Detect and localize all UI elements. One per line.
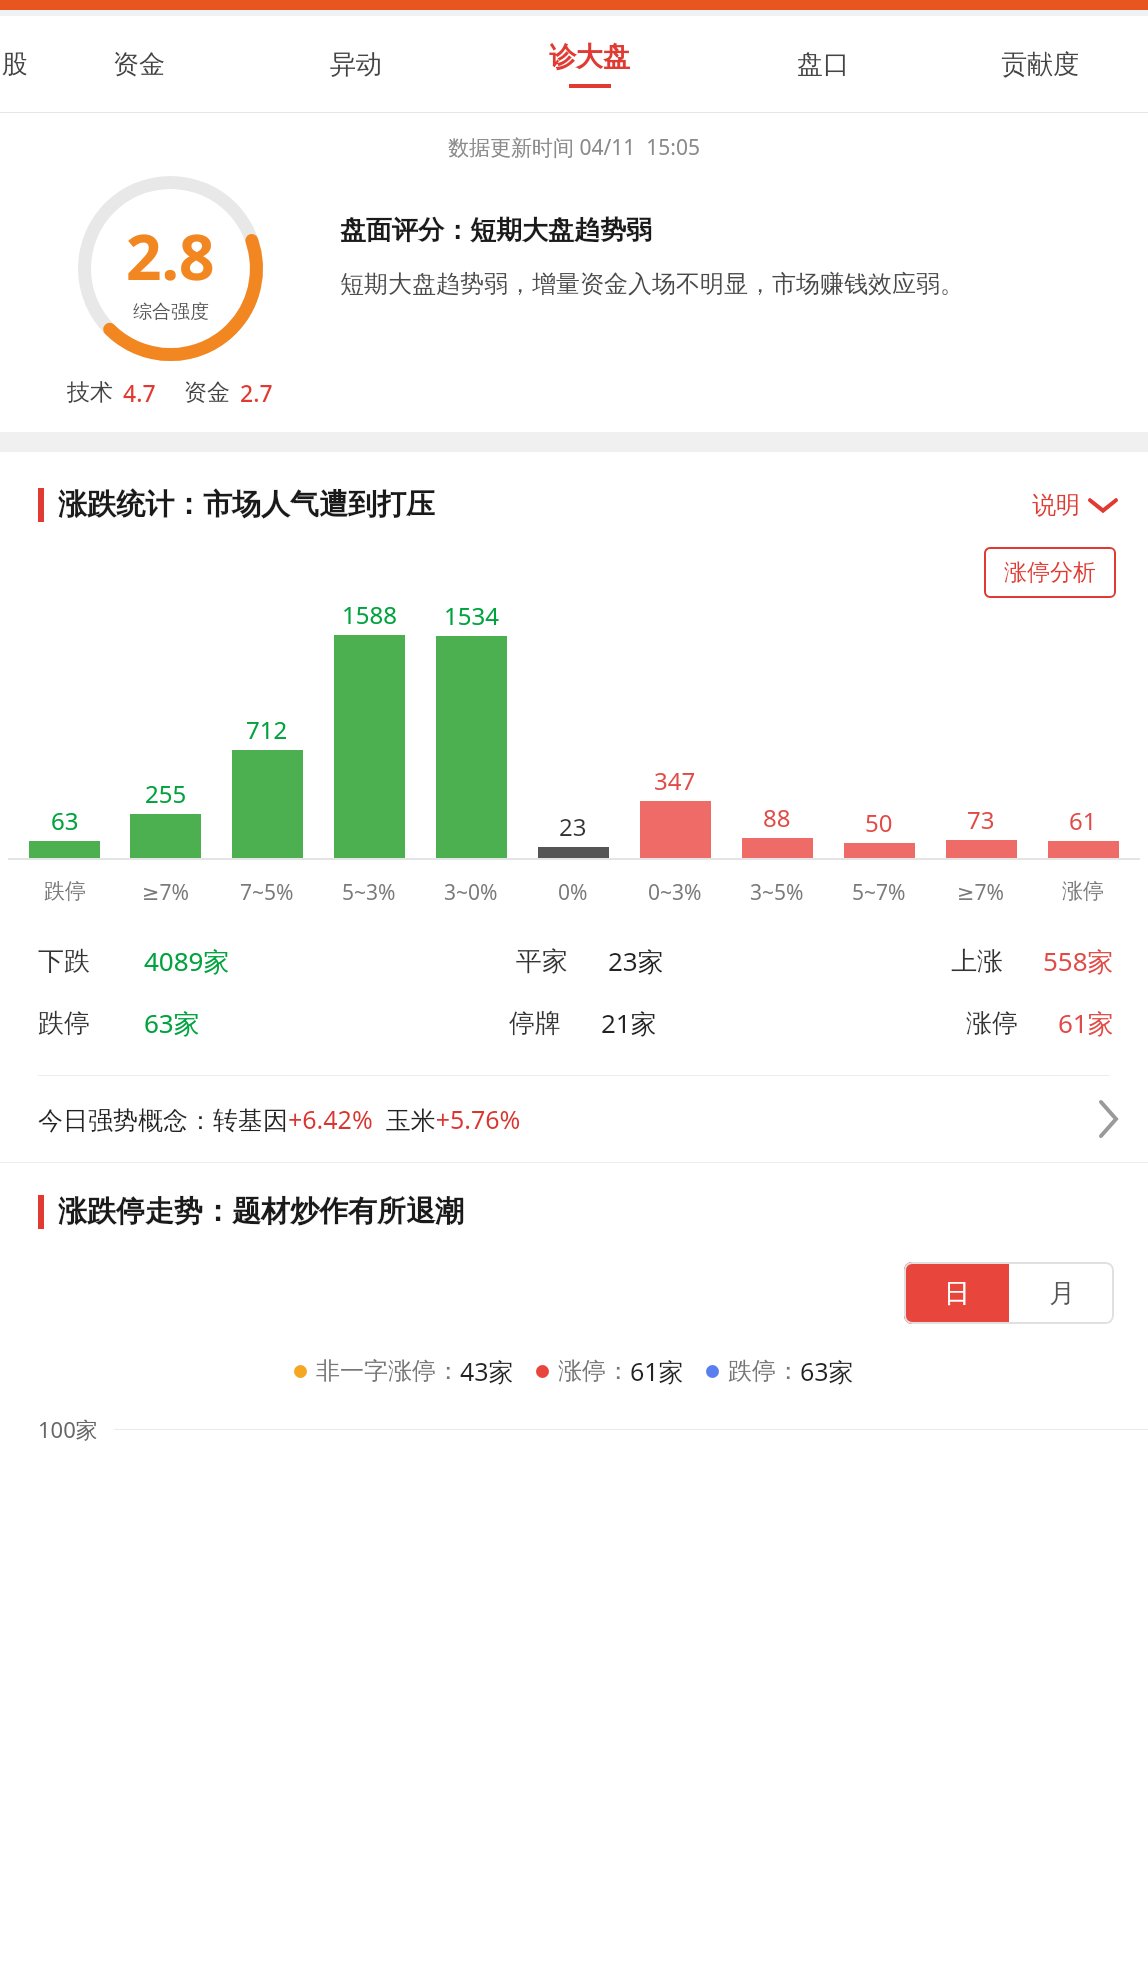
button[interactable]: 日	[904, 1262, 1009, 1324]
staticText: 跌停	[38, 1007, 90, 1040]
button[interactable]: 股	[0, 16, 30, 112]
staticText: 贡献度	[1001, 48, 1079, 81]
staticText: 盘面评分：短期大盘趋势弱	[340, 214, 652, 247]
staticText: 下跌	[38, 945, 90, 978]
staticText: 综合强度	[133, 300, 209, 324]
staticText: 说明	[1032, 490, 1080, 520]
staticText: 1534	[444, 599, 499, 632]
button[interactable]: 诊大盘	[464, 16, 714, 112]
button[interactable]: 贡献度	[931, 16, 1148, 112]
button[interactable]: 涨停分析	[984, 547, 1116, 598]
staticText: 今日强势概念：转基因+6.42% 玉米+5.76%	[38, 1102, 521, 1136]
staticText: 4089家	[144, 943, 230, 979]
staticText: 资金	[113, 48, 165, 81]
staticText: 63家	[800, 1354, 854, 1388]
staticText: 月	[1049, 1277, 1075, 1310]
staticText: ≥7%	[142, 878, 190, 907]
staticText: 23家	[608, 943, 664, 979]
staticText: 5~3%	[342, 878, 396, 907]
staticText: 2.8	[126, 214, 215, 298]
staticText: 数据更新时间 04/11 15:05	[448, 133, 700, 162]
staticText: 43家	[460, 1354, 514, 1388]
staticText: 涨跌统计：市场人气遭到打压	[58, 486, 435, 523]
staticText: 短期大盘趋势弱，增量资金入场不明显，市场赚钱效应弱。	[340, 269, 964, 299]
staticText: 跌停：	[728, 1356, 800, 1386]
staticText: 诊大盘	[549, 40, 630, 74]
staticText: 63	[51, 804, 79, 837]
staticText: 23	[559, 810, 587, 843]
staticText: 5~7%	[852, 878, 906, 907]
staticText: 3~5%	[750, 878, 804, 907]
staticText: 61家	[1058, 1005, 1114, 1041]
staticText: 停牌	[509, 1007, 561, 1040]
staticText: 61	[1069, 804, 1097, 837]
button[interactable]: 月	[1009, 1262, 1114, 1324]
staticText: 异动	[330, 48, 382, 81]
staticText: 非一字涨停：	[316, 1356, 460, 1386]
staticText: 2.7	[240, 377, 273, 408]
staticText: 347	[654, 764, 696, 797]
staticText: 上涨	[951, 945, 1003, 978]
staticText: 盘口	[797, 48, 849, 81]
staticText: 255	[145, 777, 187, 810]
button[interactable]: 异动	[247, 16, 464, 112]
staticText: 88	[763, 801, 791, 834]
staticText: 资金	[184, 378, 230, 407]
staticText: 712	[246, 713, 288, 746]
button[interactable]: 盘口	[714, 16, 931, 112]
staticText: 涨跌停走势：题材炒作有所退潮	[58, 1193, 464, 1230]
staticText: 0%	[558, 878, 588, 907]
staticText: 1588	[342, 598, 397, 631]
staticText: 73	[967, 803, 995, 836]
staticText: 100家	[38, 1414, 98, 1444]
staticText: 21家	[601, 1005, 657, 1041]
button[interactable]: 今日强势概念：转基因+6.42% 玉米+5.76%	[0, 1076, 1148, 1162]
button[interactable]: 说明	[1032, 490, 1116, 520]
staticText: 0~3%	[648, 878, 702, 907]
staticText: 股	[2, 48, 28, 81]
staticText: 61家	[630, 1354, 684, 1388]
staticText: 558家	[1043, 943, 1114, 979]
staticText: 平家	[516, 945, 568, 978]
staticText: 跌停	[44, 878, 86, 904]
staticText: 技术	[67, 378, 113, 407]
staticText: ≥7%	[957, 878, 1005, 907]
staticText: 4.7	[123, 377, 156, 408]
staticText: 涨停	[966, 1007, 1018, 1040]
other: 更多	[1098, 1102, 1118, 1136]
staticText: 3~0%	[444, 878, 498, 907]
staticText: 63家	[144, 1005, 200, 1041]
staticText: 涨停	[1062, 878, 1104, 904]
staticText: 7~5%	[240, 878, 294, 907]
button[interactable]: 资金	[30, 16, 247, 112]
staticText: 涨停分析	[1004, 558, 1096, 587]
staticText: 涨停：	[558, 1356, 630, 1386]
staticText: 日	[944, 1277, 970, 1310]
staticText: 50	[865, 806, 893, 839]
